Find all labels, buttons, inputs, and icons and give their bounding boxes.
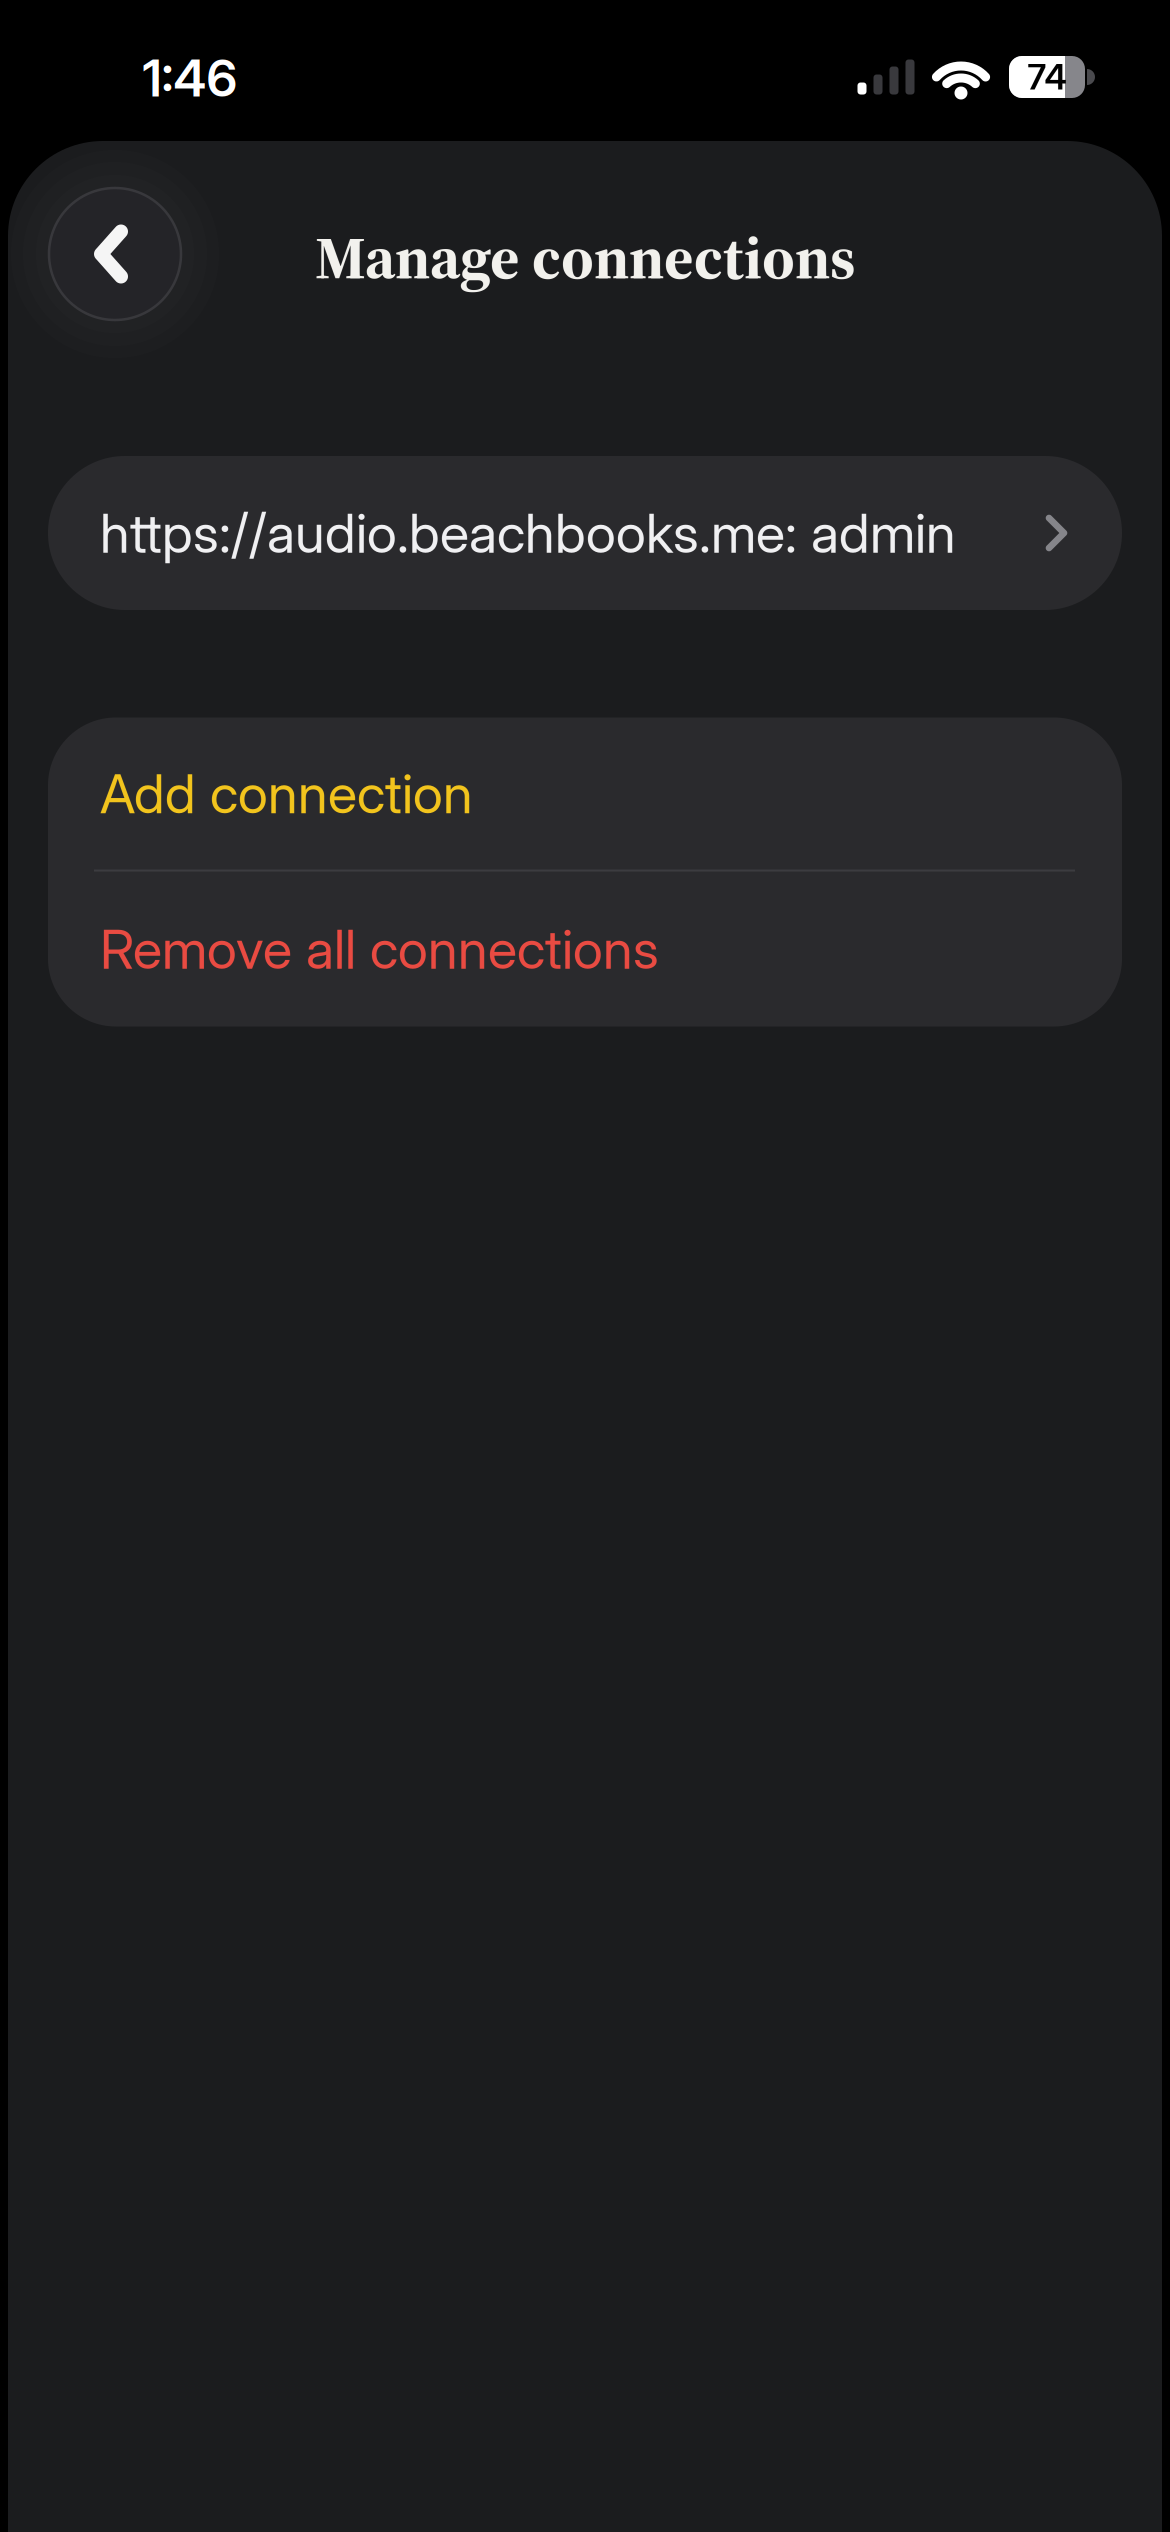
staticText: Remove all connections — [100, 916, 659, 982]
staticText: Add connection — [100, 761, 473, 826]
button[interactable]: Add connection — [48, 717, 1122, 869]
staticText: Manage connections — [315, 215, 855, 299]
button[interactable]: https://audio.beachbooks.me: admin — [48, 456, 1122, 610]
button[interactable]: Remove all connections — [48, 871, 1122, 1026]
staticText: 74 — [1027, 56, 1066, 98]
button[interactable] — [49, 188, 181, 320]
staticText: 1:46 — [142, 47, 237, 109]
staticText: https://audio.beachbooks.me: admin — [100, 500, 956, 566]
